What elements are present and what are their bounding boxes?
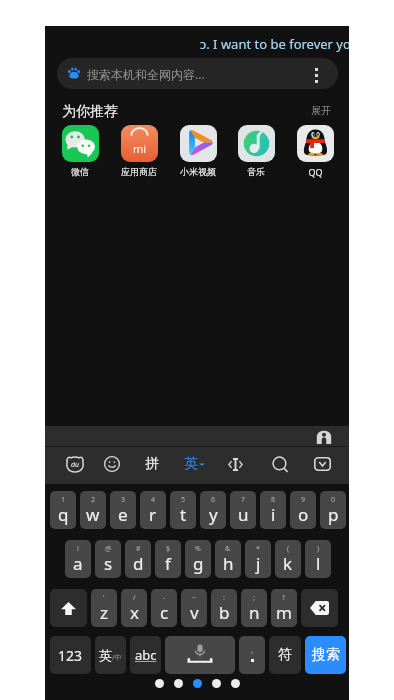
- button[interactable]: abc: [130, 636, 161, 674]
- button[interactable]: Backspace: [301, 589, 338, 627]
- staticText: mi: [133, 141, 147, 156]
- button[interactable]: 6: [200, 491, 226, 529]
- staticText: 为你推荐: [62, 103, 118, 121]
- staticText: g: [193, 552, 204, 575]
- staticText: 应用商店: [121, 166, 157, 177]
- staticText: 4: [151, 495, 156, 505]
- button[interactable]: Shift: [50, 589, 87, 627]
- button[interactable]: Move cursor: [224, 453, 246, 475]
- button[interactable]: /: [121, 589, 147, 627]
- staticText: 2: [91, 495, 96, 505]
- button[interactable]: &: [215, 540, 241, 578]
- button[interactable]: 搜索本机和全网内容...: [57, 58, 338, 89]
- button[interactable]: 搜索: [305, 636, 346, 674]
- button[interactable]: #: [125, 540, 151, 578]
- button[interactable]: ?: [271, 589, 297, 627]
- button[interactable]: mi: [113, 125, 165, 177]
- staticText: k: [283, 552, 293, 575]
- button[interactable]: *: [245, 540, 271, 578]
- button[interactable]: 音乐: [230, 125, 282, 177]
- button[interactable]: $: [155, 540, 181, 578]
- staticText: @: [105, 544, 112, 554]
- staticText: $: [166, 544, 171, 554]
- staticText: ~: [192, 593, 197, 603]
- button[interactable]: !: [65, 540, 91, 578]
- button[interactable]: 9: [290, 491, 316, 529]
- staticText: ,: [251, 643, 254, 655]
- staticText: 音乐: [247, 166, 265, 177]
- staticText: :: [223, 593, 225, 603]
- staticText: 123: [58, 646, 83, 665]
- button[interactable]: 7: [230, 491, 256, 529]
- button[interactable]: QQ: [289, 125, 341, 178]
- button[interactable]: Emoji: [101, 453, 123, 475]
- staticText: z: [100, 601, 108, 624]
- staticText: /: [133, 593, 136, 603]
- button[interactable]: (: [275, 540, 301, 578]
- staticText: 6: [211, 495, 216, 505]
- staticText: w: [86, 503, 100, 526]
- staticText: ?: [282, 593, 286, 603]
- button[interactable]: %: [185, 540, 211, 578]
- staticText: t: [180, 503, 187, 526]
- button[interactable]: 3: [110, 491, 136, 529]
- staticText: 5: [181, 495, 186, 505]
- staticText: a: [73, 552, 83, 575]
- button[interactable]: 123: [50, 636, 91, 674]
- button[interactable]: 微信: [54, 125, 106, 177]
- button[interactable]: -: [151, 589, 177, 627]
- staticText: q: [58, 503, 69, 526]
- staticText: l: [316, 552, 321, 575]
- staticText: /中: [112, 653, 122, 663]
- staticText: 9: [301, 495, 306, 505]
- staticText: x: [130, 601, 139, 624]
- button[interactable]: Space: [165, 636, 235, 674]
- button[interactable]: 8: [260, 491, 286, 529]
- button[interactable]: ,: [239, 636, 265, 674]
- staticText: 搜索本机和全网内容...: [87, 66, 205, 82]
- staticText: 拼: [145, 455, 159, 473]
- staticText: (: [287, 544, 290, 554]
- button[interactable]: 5: [170, 491, 196, 529]
- button[interactable]: 0: [320, 491, 346, 529]
- button[interactable]: ;: [241, 589, 267, 627]
- button[interactable]: :: [211, 589, 237, 627]
- staticText: 展开: [311, 104, 331, 117]
- button[interactable]: 展开: [311, 104, 333, 118]
- staticText: 7: [241, 495, 246, 505]
- button[interactable]: 小米视频: [172, 125, 224, 177]
- staticText: e: [118, 503, 128, 526]
- staticText: n: [249, 601, 260, 624]
- button[interactable]: ': [91, 589, 117, 627]
- staticText: m: [276, 601, 292, 624]
- button[interactable]: 拼: [141, 453, 163, 475]
- staticText: 英: [184, 455, 198, 473]
- button[interactable]: 英: [181, 453, 207, 475]
- button[interactable]: Baidu input: [64, 453, 86, 475]
- staticText: 小米视频: [180, 166, 216, 177]
- staticText: i: [271, 503, 276, 526]
- staticText: o: [298, 503, 309, 526]
- button[interactable]: 4: [140, 491, 166, 529]
- staticText: ': [103, 593, 105, 603]
- button[interactable]: 2: [80, 491, 106, 529]
- staticText: 微信: [71, 166, 89, 177]
- button[interactable]: 1: [50, 491, 76, 529]
- button[interactable]: @: [95, 540, 121, 578]
- staticText: 英: [99, 647, 112, 663]
- button[interactable]: ): [305, 540, 331, 578]
- staticText: 3: [121, 495, 126, 505]
- staticText: f: [165, 552, 171, 575]
- staticText: 搜索: [312, 646, 340, 664]
- staticText: QQ: [308, 166, 323, 178]
- button[interactable]: ~: [181, 589, 207, 627]
- button[interactable]: 符: [269, 636, 301, 674]
- button[interactable]: Hide keyboard: [311, 453, 333, 475]
- button[interactable]: Account: [316, 428, 332, 444]
- staticText: ;: [253, 593, 255, 603]
- staticText: d: [133, 552, 144, 575]
- button[interactable]: Search: [269, 453, 291, 475]
- staticText: ): [317, 544, 320, 554]
- button[interactable]: 英: [95, 636, 126, 674]
- staticText: du: [71, 460, 80, 470]
